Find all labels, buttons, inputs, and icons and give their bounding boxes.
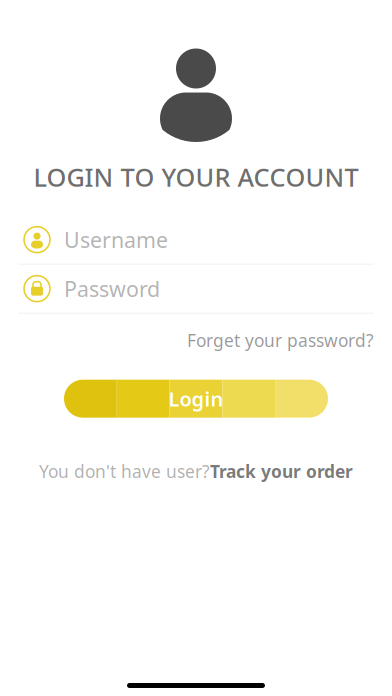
button[interactable]: Username	[0, 216, 392, 264]
button[interactable]: You don't have user?	[39, 452, 353, 491]
staticText: Login	[168, 385, 223, 412]
staticText: Track your order	[210, 460, 353, 483]
staticText: Forget your password?	[187, 329, 374, 352]
staticText: Username	[64, 225, 168, 254]
button[interactable]: Password	[0, 265, 392, 313]
staticText: Password	[64, 274, 160, 303]
staticText: LOGIN TO YOUR ACCOUNT	[33, 160, 358, 194]
button[interactable]: Forget your password?	[187, 323, 374, 358]
button[interactable]: Login	[64, 380, 328, 418]
staticText: You don't have user?	[39, 460, 210, 483]
